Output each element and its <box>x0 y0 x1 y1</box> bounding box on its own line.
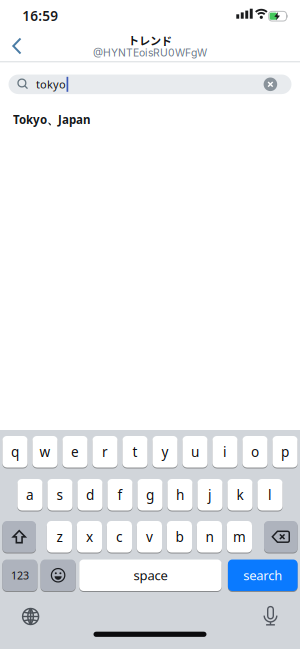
staticText: 123 <box>11 568 29 583</box>
button[interactable]: h <box>167 478 193 511</box>
staticText: z <box>56 527 62 546</box>
button[interactable]: Next keyboard <box>16 601 46 631</box>
button[interactable]: o <box>242 435 268 468</box>
button[interactable]: space <box>79 559 222 591</box>
staticText: o <box>251 442 259 461</box>
button[interactable]: b <box>167 520 192 553</box>
button[interactable]: z <box>47 520 72 553</box>
staticText: m <box>233 527 246 546</box>
staticText: r <box>102 442 108 461</box>
button[interactable]: e <box>62 435 88 468</box>
staticText: f <box>117 485 122 504</box>
staticText: n <box>205 527 213 546</box>
button[interactable]: g <box>137 478 163 511</box>
button[interactable]: t <box>122 435 148 468</box>
button[interactable]: 123 <box>2 559 37 591</box>
button[interactable]: search <box>228 559 298 591</box>
button[interactable]: l <box>257 478 283 511</box>
button[interactable]: q <box>2 435 28 468</box>
button[interactable]: a <box>17 478 43 511</box>
staticText: u <box>191 442 199 461</box>
button[interactable]: i <box>212 435 238 468</box>
staticText: i <box>223 442 227 461</box>
staticText: h <box>176 485 184 504</box>
staticText: p <box>281 442 289 461</box>
button[interactable]: Emoji <box>41 559 76 591</box>
staticText: w <box>39 442 50 461</box>
staticText: v <box>146 527 153 546</box>
staticText: c <box>116 527 123 546</box>
button[interactable]: y <box>152 435 178 468</box>
staticText: x <box>86 527 93 546</box>
staticText: d <box>86 485 94 504</box>
button[interactable]: Delete <box>264 520 298 553</box>
staticText: 16:59 <box>22 6 58 25</box>
button[interactable]: m <box>227 520 252 553</box>
button[interactable]: j <box>197 478 223 511</box>
button[interactable]: p <box>272 435 298 468</box>
button[interactable]: Back <box>2 30 32 62</box>
button[interactable]: s <box>47 478 73 511</box>
button[interactable]: Search <box>8 74 291 94</box>
button[interactable]: Clear text <box>264 77 277 91</box>
staticText: t <box>132 442 137 461</box>
button[interactable]: f <box>107 478 133 511</box>
staticText: j <box>208 485 212 504</box>
staticText: y <box>161 442 168 461</box>
staticText: q <box>11 442 19 461</box>
button[interactable]: n <box>197 520 222 553</box>
staticText: tokyo <box>36 77 66 92</box>
staticText: b <box>175 527 183 546</box>
button[interactable]: r <box>92 435 118 468</box>
staticText: l <box>268 485 272 504</box>
button[interactable]: c <box>107 520 132 553</box>
button[interactable]: u <box>182 435 208 468</box>
staticText: @HYNTEoisRU0WFgW <box>93 46 207 59</box>
button[interactable]: d <box>77 478 103 511</box>
button[interactable]: k <box>227 478 253 511</box>
button[interactable]: Tokyo、Japan <box>0 104 300 135</box>
button[interactable]: v <box>137 520 162 553</box>
staticText: e <box>71 442 79 461</box>
staticText: Tokyo、Japan <box>13 112 90 127</box>
staticText: space <box>133 566 167 584</box>
staticText: k <box>236 485 243 504</box>
button[interactable]: w <box>32 435 58 468</box>
staticText: a <box>26 485 34 504</box>
button[interactable]: x <box>77 520 102 553</box>
staticText: search <box>243 566 282 584</box>
staticText: トレンド <box>128 32 172 48</box>
button[interactable]: Shift <box>2 520 36 553</box>
staticText: g <box>146 485 154 504</box>
staticText: s <box>56 485 63 504</box>
button[interactable]: Dictate <box>255 600 285 630</box>
